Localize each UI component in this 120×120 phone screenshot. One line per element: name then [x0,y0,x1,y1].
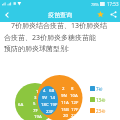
staticText: 13价 [96,97,106,102]
staticText: 4 [43,87,46,93]
staticText: 1 [36,88,39,94]
staticText: 8 [71,85,74,91]
staticText: 6A [18,101,24,107]
staticText: 7价 [96,86,104,91]
staticText: 23价 [96,108,106,113]
button[interactable]: 7价 [90,86,104,91]
staticText: 19A [34,113,42,119]
staticText: 5 [33,100,36,106]
staticText: 疫苗查询 [48,11,72,19]
button[interactable]: 23价 [90,108,106,113]
staticText: 19F [50,101,58,107]
staticText: 18C [41,101,49,107]
button[interactable]: Share [107,8,120,21]
staticText: 17:53 [107,1,119,7]
staticText: 3 [34,94,37,100]
staticText: 23F [46,108,54,114]
button[interactable]: Favorite [94,8,107,21]
staticText: 12F [71,99,79,105]
staticText: 22F [71,112,79,118]
staticText: 14 [50,94,55,100]
staticText: 10A [70,92,78,98]
staticText: 2 [62,85,65,91]
staticText: 9N [61,92,67,98]
staticText: 11A [61,99,69,105]
staticText: 9V [42,94,48,100]
staticText: 7F [33,107,38,113]
staticText: 6B [49,87,55,93]
button[interactable]: 13价 [90,97,106,102]
staticText: 20 [63,112,68,118]
staticText: 15B [61,106,69,112]
staticText: 7价肺炎结合疫苗、13价肺炎结 合疫苗、23价肺炎多糖疫苗能 预防的肺炎球菌型别… [4,21,120,53]
staticText: 78% [91,2,99,7]
button[interactable]: Back [0,8,14,22]
staticText: 17F [71,106,79,112]
